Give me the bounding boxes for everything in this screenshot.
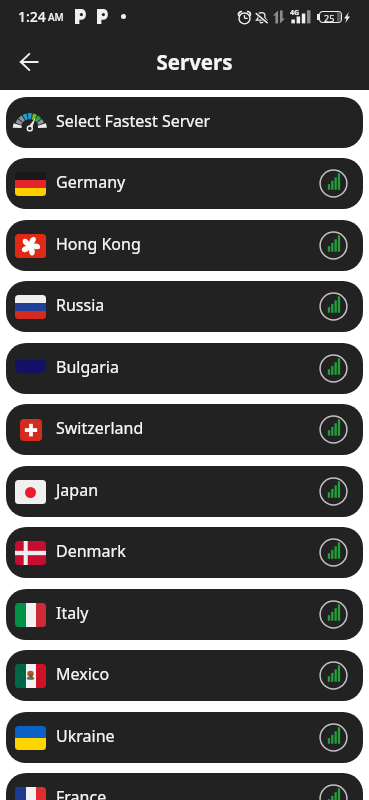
- staticText: Select Fastest Server: [56, 110, 211, 132]
- button[interactable]: France: [6, 773, 363, 800]
- staticText: Italy: [56, 602, 89, 624]
- button[interactable]: Japan: [6, 466, 363, 517]
- staticText: Germany: [56, 171, 126, 193]
- staticText: 25: [324, 12, 335, 22]
- staticText: Ukraine: [56, 725, 115, 747]
- button[interactable]: Back: [10, 43, 48, 81]
- staticText: AM: [48, 10, 64, 24]
- staticText: Hong Kong: [56, 233, 141, 255]
- staticText: France: [56, 786, 107, 800]
- staticText: Mexico: [56, 663, 110, 685]
- staticText: Denmark: [56, 540, 126, 562]
- button[interactable]: Mexico: [6, 650, 363, 701]
- staticText: Russia: [56, 294, 105, 316]
- button[interactable]: Germany: [6, 158, 363, 209]
- button[interactable]: Ukraine: [6, 712, 363, 763]
- button[interactable]: Bulgaria: [6, 343, 363, 394]
- button[interactable]: Select Fastest Server: [6, 97, 363, 148]
- button[interactable]: Russia: [6, 281, 363, 332]
- staticText: 4G: [290, 8, 300, 18]
- button[interactable]: Hong Kong: [6, 220, 363, 271]
- button[interactable]: Denmark: [6, 527, 363, 578]
- staticText: Japan: [56, 479, 99, 501]
- staticText: 1:24: [18, 7, 46, 26]
- staticText: Switzerland: [56, 417, 144, 439]
- button[interactable]: Italy: [6, 589, 363, 640]
- button[interactable]: Switzerland: [6, 404, 363, 455]
- staticText: Servers: [156, 48, 233, 76]
- staticText: Bulgaria: [56, 356, 119, 378]
